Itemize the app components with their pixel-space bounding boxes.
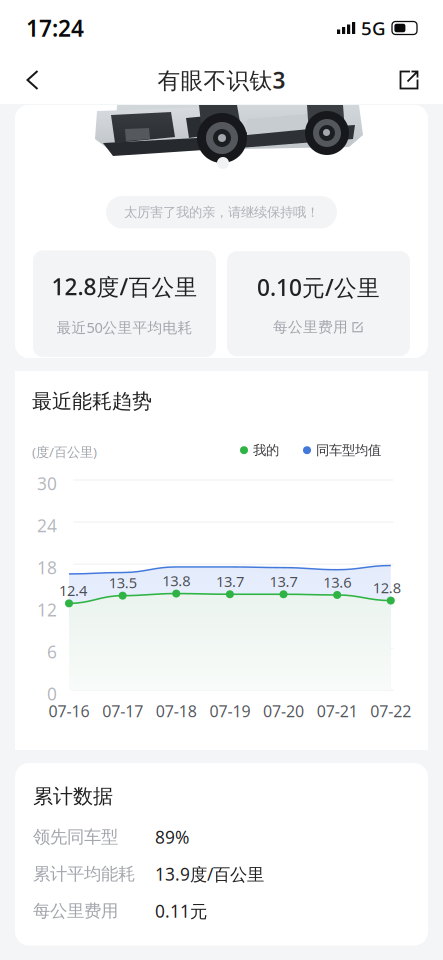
staticText: 13.9度/百公里	[155, 863, 264, 886]
staticText: 0	[47, 682, 57, 705]
staticText: 13.5	[109, 573, 137, 592]
button[interactable]: Share	[385, 58, 433, 102]
staticText: 最近50公里平均电耗	[56, 317, 192, 337]
staticText: 17:24	[26, 13, 84, 43]
staticText: 有眼不识钛3	[157, 65, 285, 95]
staticText: 07-22	[370, 700, 411, 721]
staticText: 每公里费用	[33, 900, 118, 922]
staticText: 累计平均能耗	[33, 863, 135, 885]
staticText: 12	[37, 598, 57, 621]
staticText: 13.8	[162, 571, 190, 590]
staticText: 0.11元	[155, 900, 207, 923]
staticText: 07-20	[263, 700, 304, 721]
staticText: 领先同车型	[33, 826, 118, 848]
staticText: 07-18	[156, 700, 197, 721]
staticText: 最近能耗趋势	[32, 389, 152, 414]
staticText: (度/百公里)	[32, 443, 97, 461]
button[interactable]: Back	[10, 58, 55, 102]
staticText: 5G	[361, 16, 386, 40]
staticText: 6	[47, 640, 57, 663]
staticText: 30	[37, 472, 57, 495]
staticText: 24	[37, 514, 57, 537]
staticText: 我的	[253, 442, 279, 458]
staticText: 07-17	[102, 700, 143, 721]
staticText: 12.8	[373, 578, 401, 597]
staticText: 07-19	[209, 700, 250, 721]
staticText: 89%	[155, 826, 189, 849]
staticText: 12.8度/百公里	[51, 271, 197, 301]
staticText: 18	[37, 556, 57, 579]
staticText: 太厉害了我的亲，请继续保持哦！	[124, 204, 319, 220]
staticText: 13.7	[216, 571, 244, 591]
staticText: 13.6	[323, 572, 351, 592]
staticText: 07-21	[317, 700, 358, 721]
staticText: 每公里费用	[273, 318, 348, 336]
staticText: 同车型均值	[316, 442, 381, 458]
staticText: 07-16	[48, 700, 89, 721]
staticText: 12.4	[59, 581, 87, 600]
staticText: 累计数据	[33, 784, 113, 809]
staticText: 13.7	[269, 571, 297, 591]
staticText: 0.10元/公里	[257, 272, 380, 302]
